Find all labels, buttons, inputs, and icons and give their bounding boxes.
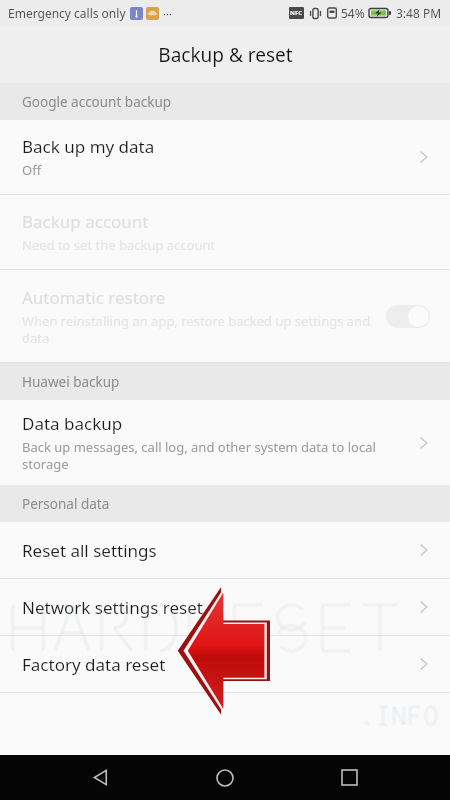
staticText: Google account backup [22, 93, 172, 111]
staticText: Backup account [22, 210, 149, 233]
staticText: NFC [290, 9, 303, 17]
other: Open [414, 540, 434, 560]
staticText: 3:48 PM [396, 5, 442, 21]
staticText: Emergency calls only [8, 5, 126, 21]
button[interactable]: Back [78, 755, 124, 800]
staticText: Back up messages, call log, and other sy… [22, 438, 406, 473]
staticText: Network settings reset [22, 596, 203, 619]
staticText: Backup & reset [158, 42, 293, 68]
button[interactable]: Reset all settings [0, 522, 450, 578]
button[interactable]: Automatic restore [0, 270, 450, 362]
staticText: Personal data [22, 495, 110, 513]
button[interactable]: Network settings reset [0, 579, 450, 635]
staticText: Data backup [22, 412, 123, 435]
button[interactable]: Backup account [0, 195, 450, 269]
staticText: ··· [163, 6, 172, 21]
other: Open [414, 147, 434, 167]
staticText: When reinstalling an app, restore backed… [22, 312, 376, 347]
other: Automatic restore toggle [386, 305, 430, 328]
staticText: 54% [341, 5, 365, 21]
other: Open [414, 654, 434, 674]
staticText: Need to set the backup account [22, 236, 216, 254]
other: Open [414, 433, 434, 453]
staticText: Off [22, 161, 42, 179]
button[interactable]: Data backup [0, 400, 450, 485]
button[interactable]: Recent apps [326, 755, 372, 800]
staticText: Huawei backup [22, 373, 120, 391]
other: Open [414, 597, 434, 617]
staticText: Factory data reset [22, 653, 166, 676]
staticText: Reset all settings [22, 539, 157, 562]
staticText: Back up my data [22, 135, 155, 158]
staticText: Automatic restore [22, 286, 166, 309]
button[interactable]: Back up my data [0, 120, 450, 194]
button[interactable]: Home [202, 755, 248, 800]
button[interactable]: Factory data reset [0, 636, 450, 692]
